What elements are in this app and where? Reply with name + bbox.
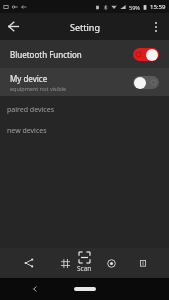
button[interactable]: Toggle on xyxy=(133,48,159,61)
staticText: 59% xyxy=(129,4,140,11)
button[interactable]: My device xyxy=(0,68,169,96)
staticText: Scan xyxy=(77,264,92,273)
button[interactable]: Share xyxy=(18,252,40,274)
button[interactable]: Back xyxy=(0,13,27,40)
button[interactable]: Home xyxy=(74,287,96,291)
staticText: My device xyxy=(10,73,48,84)
button[interactable]: Toggle off xyxy=(133,76,159,89)
staticText: equipment not visible xyxy=(10,85,67,92)
staticText: paired devices xyxy=(7,105,54,115)
staticText: 15:59 xyxy=(150,3,166,11)
button[interactable]: Bluetooth Function xyxy=(0,40,169,68)
staticText: Bluetooth Function xyxy=(10,49,82,60)
button[interactable]: Scan xyxy=(72,251,97,274)
button[interactable]: Locate xyxy=(101,253,121,273)
button[interactable]: Delete xyxy=(133,253,153,273)
button[interactable]: Back xyxy=(26,280,44,298)
button[interactable]: More options xyxy=(142,13,169,40)
button[interactable]: Filter xyxy=(55,253,75,273)
staticText: new devices xyxy=(7,126,47,136)
staticText: Setting xyxy=(70,21,100,33)
